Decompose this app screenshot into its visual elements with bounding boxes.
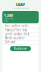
staticText: Redeem bbox=[14, 47, 27, 50]
button[interactable]: Lunch combo deal bbox=[2, 32, 38, 36]
staticText: Free coffee refill bbox=[4, 24, 28, 28]
staticText: 1,240 bbox=[4, 13, 13, 18]
button[interactable]: Pastry of the day bbox=[2, 28, 38, 32]
staticText: Merch voucher bbox=[4, 36, 24, 40]
staticText: points available bbox=[4, 18, 14, 20]
staticText: Gift card bbox=[4, 40, 15, 44]
staticText: Your daily green habits bbox=[12, 7, 28, 9]
button[interactable]: Redeem bbox=[10, 46, 31, 51]
staticText: Pastry of the day bbox=[4, 28, 26, 32]
button[interactable]: Gift card bbox=[2, 40, 38, 44]
staticText: Lunch combo deal bbox=[4, 32, 29, 36]
button[interactable]: Merch voucher bbox=[2, 36, 38, 40]
button[interactable]: Free coffee refill bbox=[2, 24, 38, 28]
staticText: LEAF bbox=[16, 2, 25, 7]
staticText: Gold tier bbox=[4, 20, 9, 22]
